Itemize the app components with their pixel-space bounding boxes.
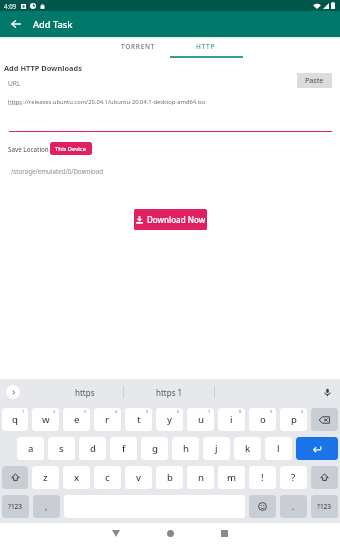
button[interactable]: d <box>79 437 106 460</box>
staticText: y <box>167 413 173 426</box>
button[interactable]: Paste <box>297 73 332 88</box>
button[interactable]: ! <box>249 466 276 489</box>
button[interactable]: Recents <box>214 523 234 543</box>
staticText: 0 <box>301 409 304 414</box>
staticText: 6 <box>177 409 180 414</box>
staticText: URL <box>8 79 21 88</box>
button[interactable]: This Device <box>50 142 92 155</box>
staticText: t <box>137 413 141 426</box>
staticText: https <box>8 98 23 106</box>
button[interactable]: ?123 <box>2 495 29 518</box>
button[interactable]: z <box>32 466 59 489</box>
staticText: 7 <box>208 409 211 414</box>
button[interactable]: Back <box>7 15 25 33</box>
button[interactable]: TORRENT <box>104 37 172 58</box>
button[interactable]: b <box>156 466 183 489</box>
button[interactable]: h <box>172 437 199 460</box>
button[interactable]: p <box>280 408 307 431</box>
button[interactable]: ? <box>280 466 307 489</box>
staticText: n <box>198 471 204 484</box>
button[interactable]: x <box>63 466 90 489</box>
staticText: ! <box>261 471 264 484</box>
staticText: Add Task <box>33 18 73 31</box>
staticText: Save Location <box>8 145 49 153</box>
button[interactable]: a <box>17 437 44 460</box>
staticText: g <box>152 442 158 455</box>
button[interactable]: o <box>249 408 276 431</box>
button[interactable]: s <box>48 437 75 460</box>
button[interactable]: c <box>94 466 121 489</box>
staticText: o <box>260 413 266 426</box>
staticText: b <box>167 471 173 484</box>
staticText: e <box>74 413 80 426</box>
button[interactable]: q <box>2 408 28 431</box>
staticText: 8 <box>239 409 242 414</box>
staticText: Download Now <box>147 214 206 225</box>
button[interactable]: Back <box>106 523 126 543</box>
button[interactable]: Home <box>160 523 180 543</box>
staticText: 3 <box>84 409 87 414</box>
staticText: 4 <box>115 409 118 414</box>
staticText: . <box>292 501 295 512</box>
staticText: w <box>42 413 50 426</box>
button[interactable]: n <box>187 466 214 489</box>
staticText: z <box>43 471 48 484</box>
staticText: p <box>291 413 297 426</box>
staticText: m <box>227 471 236 484</box>
staticText: 9 <box>270 409 273 414</box>
button[interactable]: Emoji <box>249 495 276 518</box>
staticText: HTTP <box>196 42 216 51</box>
button[interactable]: w <box>32 408 59 431</box>
button[interactable]: Voice input <box>321 386 334 399</box>
staticText: , <box>45 501 48 512</box>
button[interactable]: m <box>218 466 245 489</box>
staticText: k <box>245 442 251 455</box>
staticText: j <box>215 442 218 455</box>
staticText: r <box>105 413 110 426</box>
button[interactable]: r <box>94 408 121 431</box>
button[interactable]: . <box>280 495 307 518</box>
button[interactable]: l <box>265 437 292 460</box>
button[interactable]: j <box>203 437 230 460</box>
staticText: s <box>59 442 64 455</box>
staticText: This Device <box>55 145 87 153</box>
button[interactable]: Enter <box>296 437 338 460</box>
staticText: h <box>183 442 189 455</box>
staticText: Paste <box>305 76 324 86</box>
staticText: i <box>230 413 233 426</box>
staticText: TORRENT <box>121 42 156 51</box>
staticText: ?123 <box>317 502 332 511</box>
staticText: v <box>136 471 142 484</box>
button[interactable]: k <box>234 437 261 460</box>
staticText: l <box>277 442 280 455</box>
button[interactable]: v <box>125 466 152 489</box>
staticText: 1 <box>22 409 25 414</box>
button[interactable]: u <box>187 408 214 431</box>
staticText: ://releases.ubuntu.com/20.04.1/ubuntu-20… <box>23 98 206 106</box>
button[interactable]: Backspace <box>311 408 338 431</box>
staticText: ? <box>291 471 296 484</box>
button[interactable]: , <box>33 495 60 518</box>
staticText: a <box>28 442 34 455</box>
staticText: 2 <box>53 409 56 414</box>
button[interactable]: More suggestions <box>6 385 20 399</box>
button[interactable]: y <box>156 408 183 431</box>
staticText: d <box>90 442 96 455</box>
button[interactable]: Download Now <box>134 209 207 230</box>
button[interactable]: Shift <box>311 466 338 489</box>
button[interactable]: HTTP <box>172 37 240 58</box>
staticText: 5 <box>146 409 149 414</box>
button[interactable]: ?123 <box>311 495 338 518</box>
button[interactable]: e <box>63 408 90 431</box>
staticText: x <box>74 471 80 484</box>
button[interactable]: f <box>110 437 137 460</box>
button[interactable]: i <box>218 408 245 431</box>
button[interactable]: t <box>125 408 152 431</box>
staticText: Add HTTP Downloads <box>4 63 82 73</box>
staticText: ?123 <box>8 502 23 511</box>
staticText: f <box>122 442 126 455</box>
staticText: https <box>75 387 95 398</box>
button[interactable]: g <box>141 437 168 460</box>
button[interactable]: Shift <box>2 466 28 489</box>
